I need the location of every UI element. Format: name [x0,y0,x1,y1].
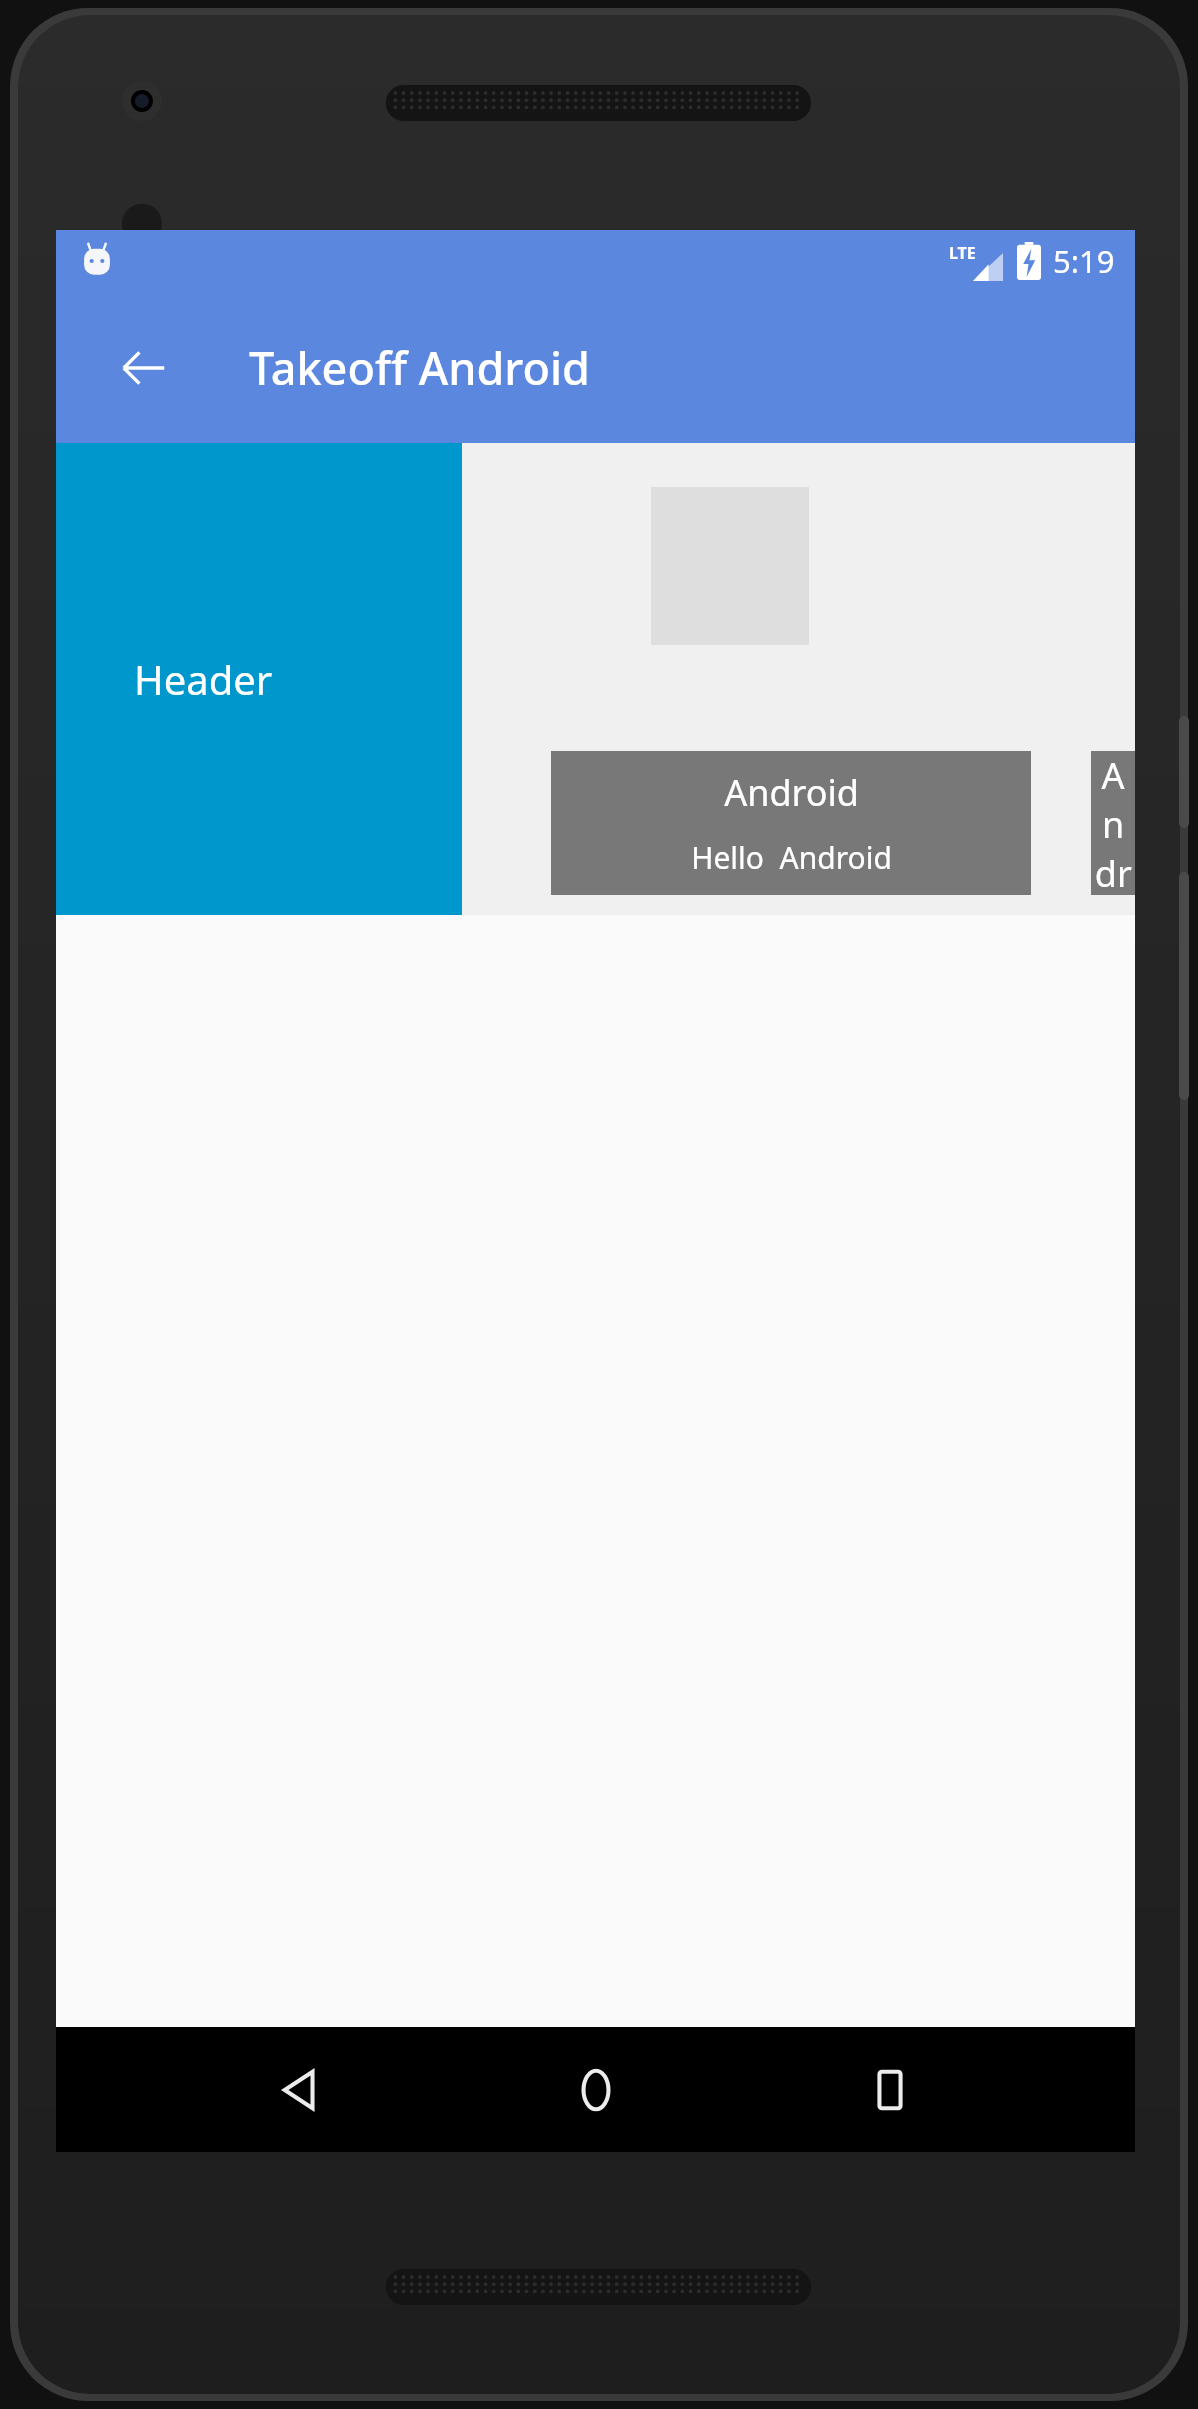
button[interactable]: Back [112,336,176,400]
button[interactable]: Header [56,443,462,915]
button[interactable]: Back [251,2040,351,2140]
button[interactable]: Home [546,2040,646,2140]
button[interactable]: Android [551,751,1031,895]
staticText: Takeoff Android [249,337,590,398]
button[interactable]: Recent apps [840,2040,940,2140]
staticText: 5:19 [1053,240,1115,282]
button[interactable]: Android [1091,751,1135,895]
staticText: Android [724,768,859,817]
staticText: Hello Android [691,837,892,878]
staticText: Header [134,652,273,706]
staticText: LTE [949,242,976,264]
staticText: Android [1091,751,1135,895]
